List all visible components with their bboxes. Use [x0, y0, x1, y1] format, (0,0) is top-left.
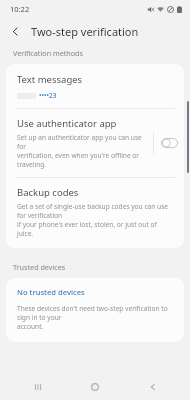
staticText: No trusted devices	[17, 287, 85, 297]
staticText: Use authenticator app	[17, 117, 117, 130]
staticText: Verification methods	[13, 48, 83, 58]
staticText: Get a set of single-use backup codes you…	[17, 202, 173, 238]
staticText: Text messages	[17, 73, 83, 86]
staticText: Set up an authenticator app you can use …	[17, 133, 147, 169]
button[interactable]: No trusted devices	[6, 278, 184, 342]
button[interactable]: Backup codes	[6, 178, 184, 248]
button[interactable]: Use authenticator app toggle	[154, 128, 184, 158]
button[interactable]: Use authenticator app	[6, 109, 184, 177]
button[interactable]: Back	[133, 374, 173, 400]
staticText: ••••23	[39, 91, 57, 100]
button[interactable]: Home	[75, 374, 115, 400]
staticText: 10:22	[10, 4, 30, 14]
staticText: These devices don't need two-step verifi…	[17, 304, 173, 331]
button[interactable]: Text messages	[6, 64, 184, 108]
staticText: Backup codes	[17, 186, 79, 199]
button[interactable]: Navigate up	[4, 20, 26, 42]
staticText: Two-step verification	[31, 24, 139, 39]
staticText: Trusted devices	[13, 262, 66, 272]
button[interactable]: Recent apps	[18, 374, 58, 400]
